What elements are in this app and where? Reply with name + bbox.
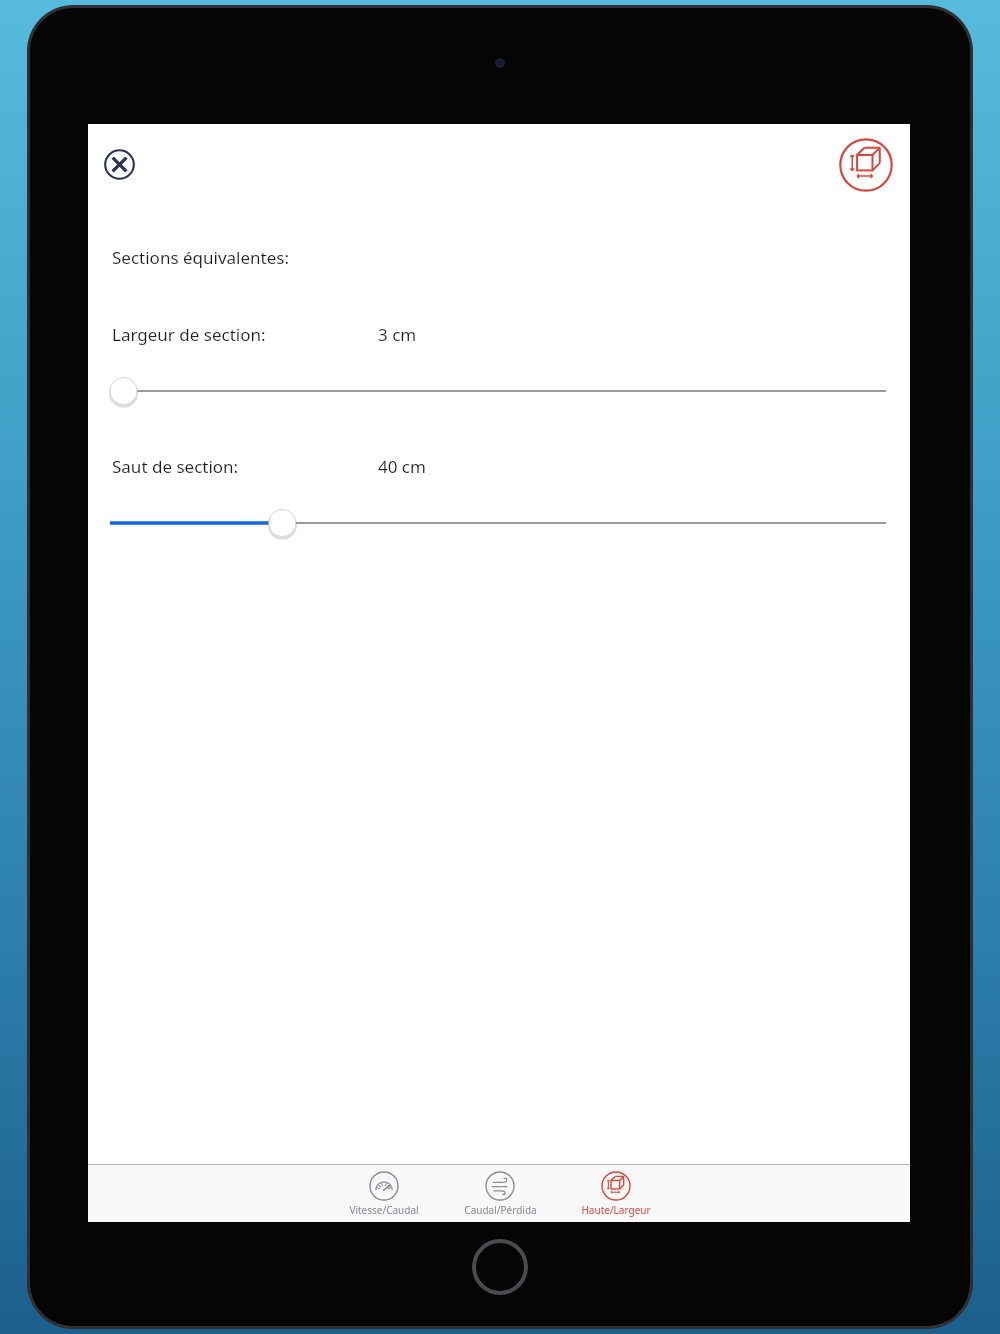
other: Home bbox=[471, 1238, 529, 1296]
staticText: Caudal/Pérdida bbox=[464, 1203, 537, 1217]
staticText: Haute/Largeur bbox=[581, 1203, 651, 1217]
staticText: Saut de section: bbox=[112, 455, 239, 478]
staticText: 40 cm bbox=[378, 455, 426, 478]
staticText: Largeur de section: bbox=[112, 323, 266, 346]
staticText: Sections équivalentes: bbox=[112, 246, 289, 269]
button[interactable]: Caudal/Pérdida bbox=[442, 1165, 558, 1222]
button[interactable]: Haute/Largeur bbox=[558, 1165, 674, 1222]
button[interactable]: Height and width section bbox=[834, 133, 898, 197]
staticText: 3 cm bbox=[378, 323, 417, 346]
button[interactable]: Slider bbox=[88, 506, 910, 540]
button[interactable]: Slider bbox=[88, 374, 910, 408]
button[interactable]: Vitesse/Caudal bbox=[326, 1165, 442, 1222]
staticText: Vitesse/Caudal bbox=[349, 1203, 419, 1217]
button[interactable]: Close bbox=[96, 141, 142, 187]
